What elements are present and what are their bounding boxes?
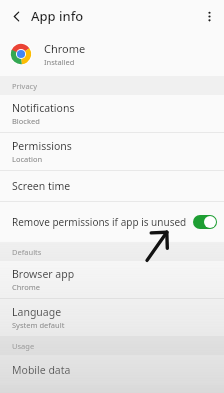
button[interactable]: Notifications (0, 95, 224, 132)
staticText: Notifications (12, 101, 75, 115)
staticText: Privacy (12, 81, 38, 91)
staticText: Mobile data (12, 363, 71, 377)
button[interactable]: Screen time (0, 171, 224, 201)
staticText: Usage (12, 341, 35, 351)
staticText: Remove permissions if app is unused (12, 215, 187, 229)
staticText: Blocked (12, 116, 40, 126)
button[interactable]: Mobile data (0, 355, 224, 385)
button[interactable]: Remove permissions if app is unused (0, 202, 224, 242)
staticText: Screen time (12, 179, 71, 193)
staticText: Permissions (12, 139, 72, 153)
staticText: Chrome (44, 41, 86, 56)
staticText: Defaults (12, 247, 42, 257)
staticText: Chrome (12, 282, 41, 292)
staticText: Location (12, 154, 43, 164)
button[interactable]: More options (197, 4, 221, 28)
staticText: System default (12, 320, 65, 330)
button[interactable]: Permissions (0, 133, 224, 170)
button[interactable]: Chrome (0, 32, 224, 76)
button[interactable]: Remove permissions if app is unused, on (193, 215, 217, 229)
staticText: Language (12, 305, 62, 319)
button[interactable]: Back (4, 4, 28, 28)
button[interactable]: Language (0, 299, 224, 336)
staticText: Installed (44, 57, 75, 67)
staticText: Browser app (12, 267, 75, 281)
staticText: App info (31, 7, 84, 25)
button[interactable]: Browser app (0, 261, 224, 298)
